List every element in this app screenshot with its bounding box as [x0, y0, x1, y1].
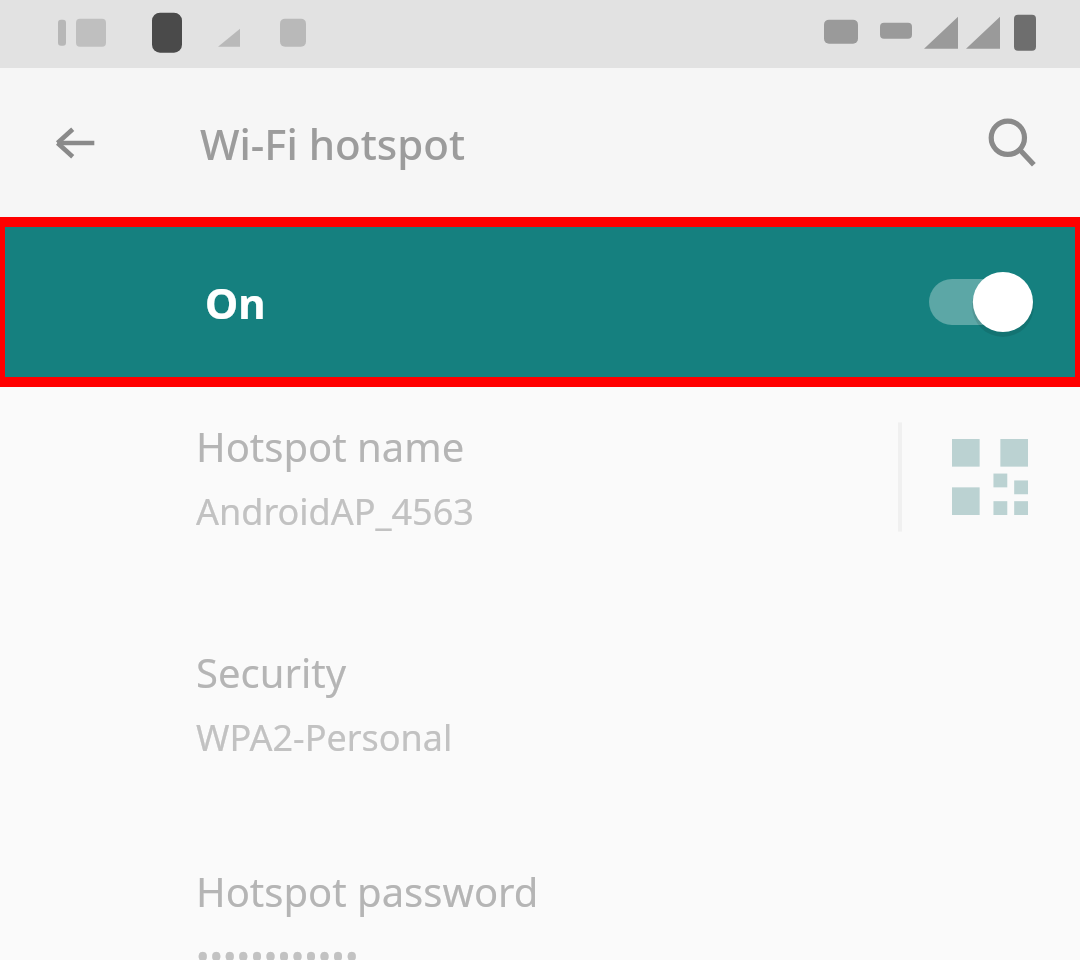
button[interactable]: Hotspot name	[0, 412, 1080, 542]
button[interactable]: Security	[0, 638, 1080, 768]
staticText: Security	[196, 645, 347, 699]
staticText: On	[205, 274, 266, 331]
staticText: Hotspot name	[196, 419, 465, 473]
button[interactable]: Hotspot password	[0, 864, 1080, 960]
button[interactable]: Search	[964, 95, 1060, 191]
button[interactable]: Hotspot toggle	[929, 270, 1033, 334]
button[interactable]: On	[5, 227, 1075, 377]
staticText: AndroidAP_4563	[196, 487, 474, 536]
staticText: Hotspot password	[196, 864, 539, 918]
staticText: ••••••••••••	[196, 932, 359, 960]
button[interactable]: Back	[27, 95, 123, 191]
staticText: Wi-Fi hotspot	[200, 115, 466, 172]
staticText: WPA2-Personal	[196, 713, 453, 762]
button[interactable]: Share hotspot QR code	[900, 412, 1080, 542]
